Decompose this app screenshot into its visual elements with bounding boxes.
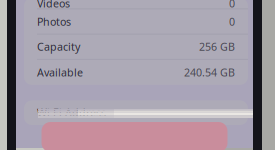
button[interactable]: Capacity	[24, 34, 248, 59]
staticText: Capacity	[37, 40, 80, 54]
button[interactable]: Available	[24, 60, 248, 85]
staticText: 0	[229, 0, 235, 10]
button[interactable]: Photos	[24, 9, 248, 34]
staticText: 240.54 GB	[184, 65, 235, 79]
staticText: Photos	[37, 14, 71, 29]
button[interactable]: Videos	[24, 0, 248, 8]
staticText: 256 GB	[199, 40, 235, 54]
staticText: Available	[37, 65, 83, 79]
button[interactable]: Wi-Fi Address	[24, 100, 248, 125]
staticText: 0	[229, 14, 235, 29]
staticText: Wi-Fi Address	[37, 106, 106, 120]
staticText: Videos	[37, 0, 70, 10]
